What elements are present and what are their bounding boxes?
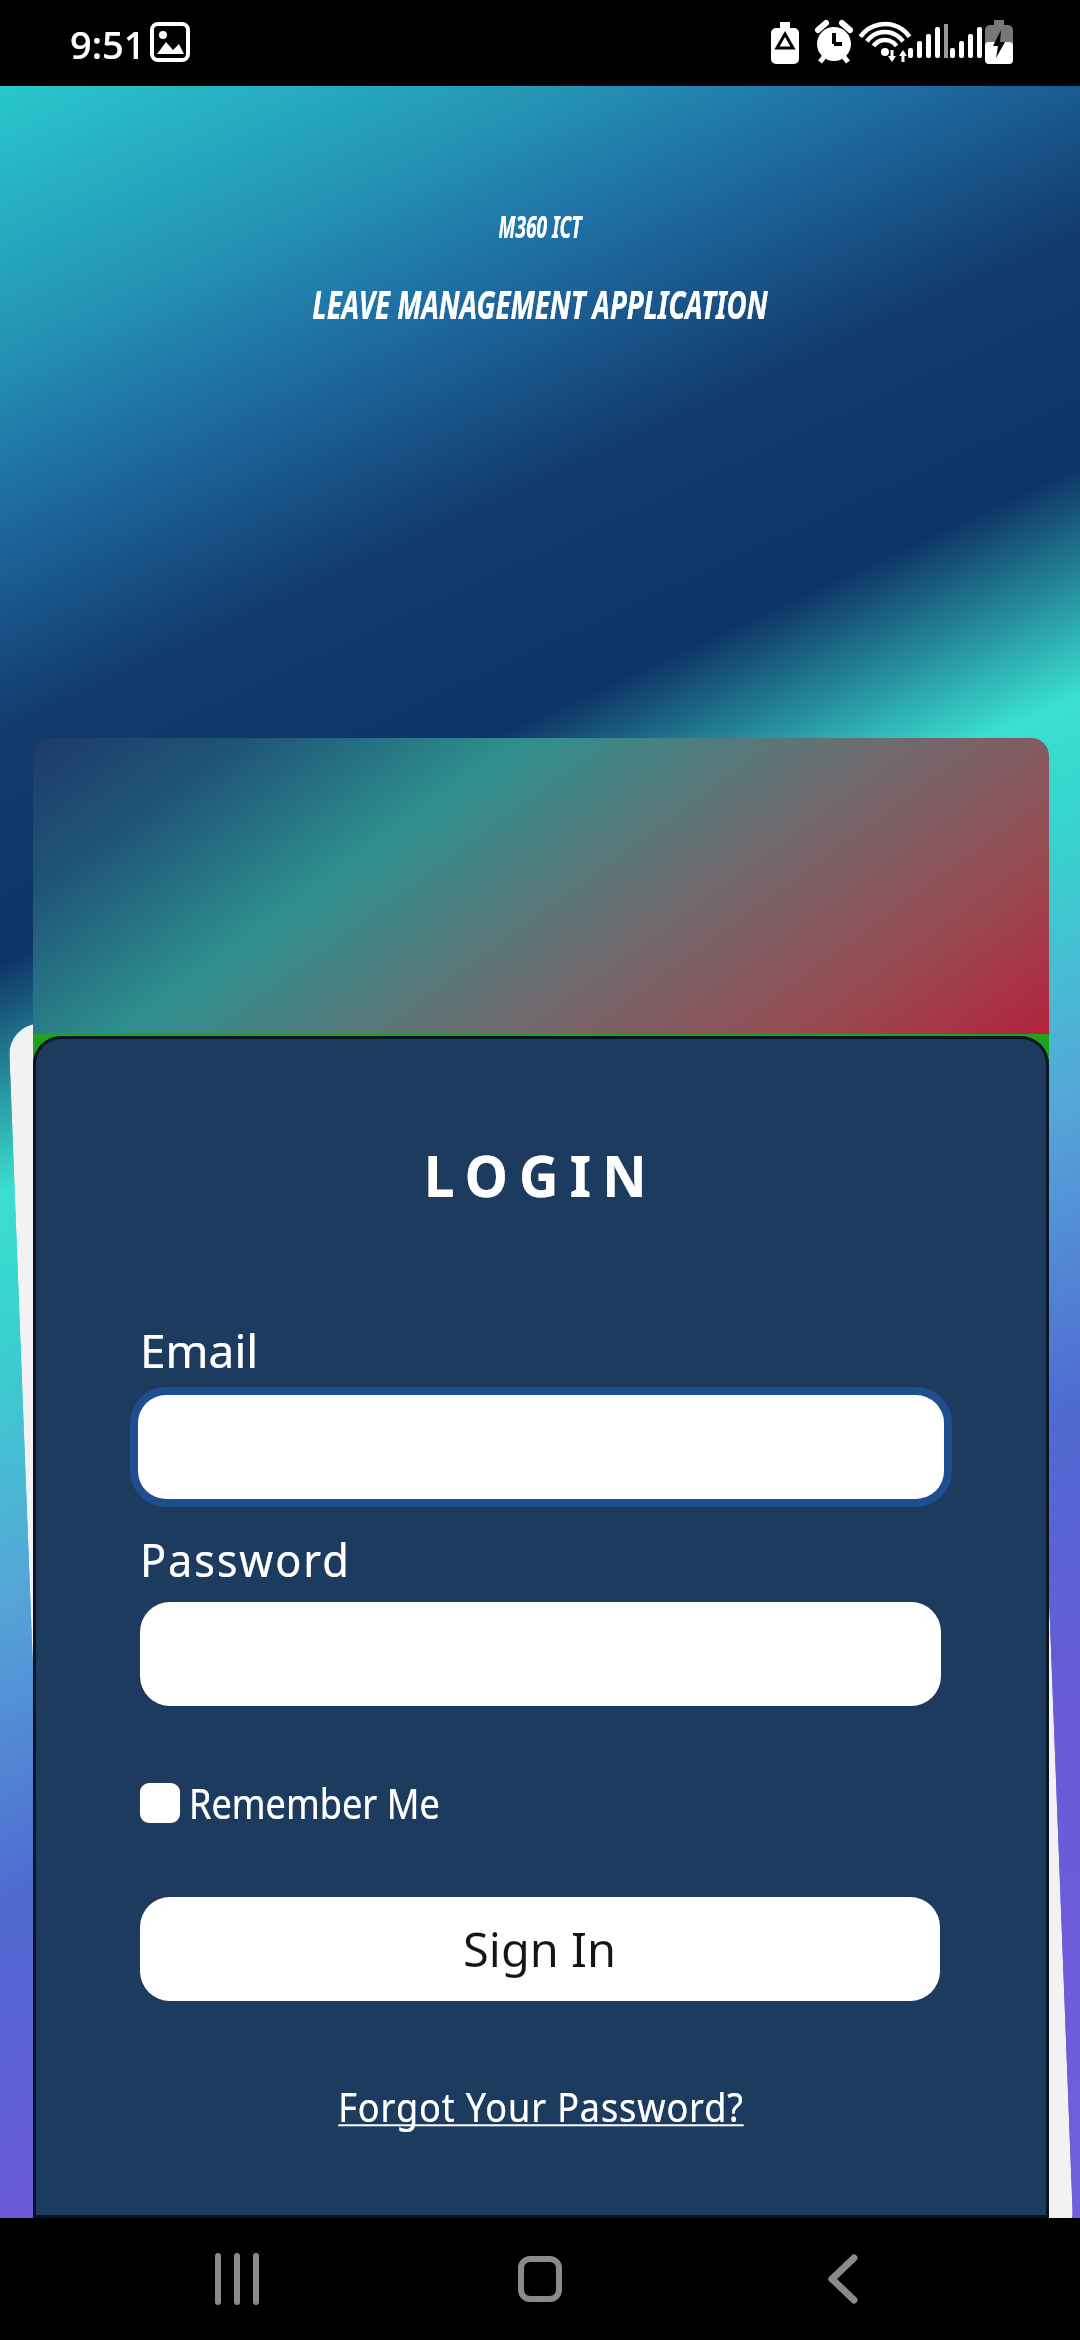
button[interactable] (140, 1602, 941, 1706)
staticText: Password (140, 1528, 351, 1591)
button[interactable] (518, 2256, 562, 2302)
staticText: M360 ICT (194, 206, 886, 247)
staticText: LEAVE MANAGEMENT APPLICATION (167, 276, 913, 330)
staticText: 9:51 (70, 18, 146, 70)
staticText: Sign In (463, 1917, 617, 1981)
staticText: Remember Me (189, 1774, 440, 1831)
button[interactable] (214, 2256, 264, 2302)
staticText: LOGIN (63, 1135, 1018, 1214)
button[interactable]: Forgot Your Password? (84, 2079, 998, 2133)
button[interactable]: Remember Me (140, 1774, 481, 1831)
staticText: Email (140, 1319, 259, 1382)
button[interactable]: Sign In (140, 1897, 940, 2001)
button[interactable] (828, 2256, 858, 2302)
button[interactable] (138, 1395, 944, 1499)
